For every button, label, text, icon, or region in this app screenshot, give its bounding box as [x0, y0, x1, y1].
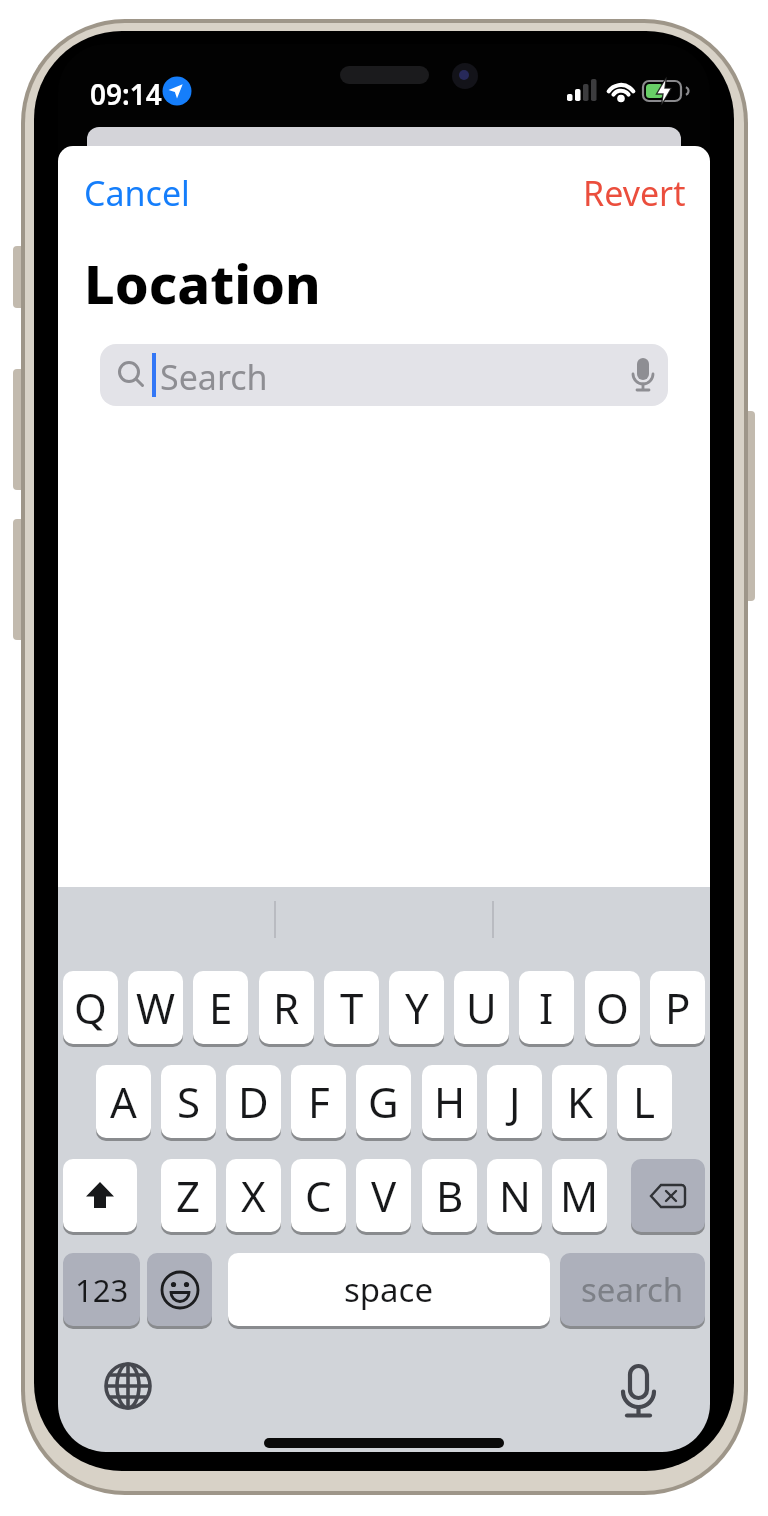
button[interactable]: Q	[63, 971, 118, 1044]
staticText: space	[344, 1267, 434, 1312]
button[interactable]: Y	[389, 971, 444, 1044]
staticText: X	[241, 1167, 266, 1224]
staticText: 123	[75, 1269, 129, 1311]
button[interactable]: G	[356, 1065, 411, 1138]
staticText: J	[509, 1073, 521, 1130]
button[interactable]: H	[422, 1065, 477, 1138]
button[interactable]: V	[356, 1159, 411, 1232]
button[interactable]	[63, 1159, 137, 1232]
staticText: N	[499, 1167, 531, 1224]
button[interactable]: C	[291, 1159, 346, 1232]
button[interactable]: U	[454, 971, 509, 1044]
button[interactable]: E	[193, 971, 248, 1044]
button[interactable]	[104, 1362, 152, 1410]
button[interactable]: A	[96, 1065, 151, 1138]
staticText: Y	[405, 979, 429, 1036]
button[interactable]: space	[228, 1253, 550, 1326]
staticText: W	[136, 979, 176, 1036]
button[interactable]: L	[617, 1065, 672, 1138]
button[interactable]	[631, 1159, 705, 1232]
button[interactable]: Revert	[583, 170, 686, 216]
button[interactable]: Cancel	[84, 170, 190, 216]
button[interactable]: B	[422, 1159, 477, 1232]
button[interactable]: R	[259, 971, 314, 1044]
staticText: M	[560, 1167, 599, 1224]
staticText: C	[305, 1167, 332, 1224]
staticText: Revert	[583, 170, 686, 216]
button[interactable]: M	[552, 1159, 607, 1232]
staticText: Location	[84, 246, 321, 320]
staticText: Search	[160, 354, 268, 400]
button[interactable]: D	[226, 1065, 281, 1138]
button[interactable]	[618, 1362, 660, 1420]
button[interactable]: 123	[63, 1253, 140, 1326]
staticText: G	[368, 1073, 399, 1130]
staticText: E	[209, 979, 233, 1036]
button[interactable]: I	[519, 971, 574, 1044]
button[interactable]: P	[650, 971, 705, 1044]
button[interactable]: X	[226, 1159, 281, 1232]
staticText: U	[466, 979, 497, 1036]
staticText: V	[371, 1167, 397, 1224]
staticText: K	[567, 1073, 593, 1130]
button[interactable]: N	[487, 1159, 542, 1232]
staticText: A	[110, 1073, 137, 1130]
button[interactable]: K	[552, 1065, 607, 1138]
button[interactable]: search	[560, 1253, 705, 1326]
staticText: Q	[74, 979, 107, 1036]
staticText: F	[308, 1073, 330, 1130]
staticText: B	[436, 1167, 464, 1224]
button[interactable]: Search	[100, 344, 668, 406]
staticText: S	[177, 1073, 201, 1130]
staticText: R	[273, 979, 300, 1036]
button[interactable]: Z	[161, 1159, 216, 1232]
staticText: 09:14	[90, 75, 162, 113]
button[interactable]: T	[324, 971, 379, 1044]
button[interactable]: O	[585, 971, 640, 1044]
staticText: L	[633, 1073, 656, 1130]
button[interactable]: J	[487, 1065, 542, 1138]
staticText: Cancel	[84, 170, 190, 216]
staticText: D	[238, 1073, 269, 1130]
button[interactable]	[147, 1253, 212, 1326]
staticText: search	[581, 1267, 684, 1312]
staticText: I	[539, 979, 554, 1036]
staticText: O	[596, 979, 629, 1036]
staticText: P	[665, 979, 691, 1036]
staticText: T	[340, 979, 364, 1036]
button[interactable]: F	[291, 1065, 346, 1138]
button[interactable]: S	[161, 1065, 216, 1138]
staticText: Z	[176, 1167, 201, 1224]
button[interactable]: W	[128, 971, 183, 1044]
staticText: H	[434, 1073, 466, 1130]
